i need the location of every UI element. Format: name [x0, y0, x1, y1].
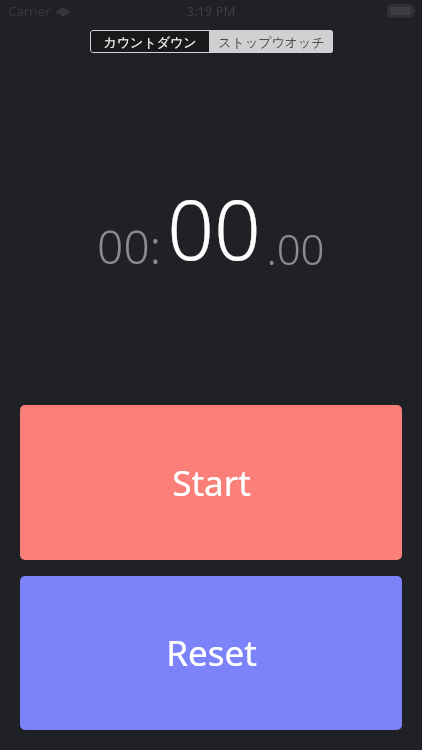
staticText: 3:19 PM	[186, 2, 236, 20]
staticText: Reset	[166, 629, 257, 677]
staticText: Start	[172, 459, 251, 507]
staticText: 00	[167, 172, 261, 284]
staticText: カウントダウン	[103, 34, 197, 50]
staticText: ストップウオッチ	[218, 34, 325, 50]
button[interactable]: Start	[20, 405, 402, 560]
staticText: 00:	[97, 215, 161, 278]
button[interactable]: ストップウオッチ	[210, 30, 333, 53]
staticText: Carrier	[8, 2, 51, 20]
staticText: .00	[266, 220, 325, 277]
button[interactable]: Reset	[20, 576, 402, 730]
button[interactable]: カウントダウン	[90, 30, 209, 53]
